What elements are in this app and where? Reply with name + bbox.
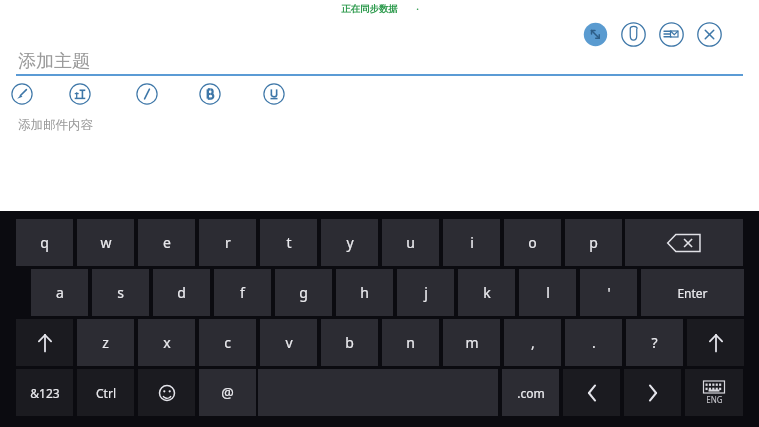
button[interactable]: Font size: [69, 83, 91, 105]
button[interactable]: u: [382, 219, 439, 266]
staticText: k: [483, 283, 491, 302]
button[interactable]: Italic: [136, 83, 158, 105]
staticText: 正在同步数据: [341, 3, 398, 15]
button[interactable]: e: [138, 219, 195, 266]
button[interactable]: r: [199, 219, 256, 266]
button[interactable]: s: [92, 269, 149, 316]
button[interactable]: @: [199, 369, 256, 416]
staticText: j: [424, 283, 428, 302]
button[interactable]: .com: [502, 369, 559, 416]
button[interactable]: z: [77, 319, 134, 366]
staticText: f: [240, 283, 245, 302]
button[interactable]: Backspace: [625, 219, 743, 266]
staticText: r: [225, 233, 231, 252]
button[interactable]: v: [260, 319, 317, 366]
button[interactable]: Shift: [16, 319, 73, 366]
button[interactable]: y: [321, 219, 378, 266]
staticText: z: [102, 333, 109, 352]
staticText: l: [546, 283, 550, 302]
staticText: @: [221, 383, 234, 402]
button[interactable]: h: [336, 269, 393, 316]
staticText: ENG: [706, 394, 723, 405]
button[interactable]: c: [199, 319, 256, 366]
button[interactable]: d: [153, 269, 210, 316]
staticText: ,: [531, 333, 535, 352]
staticText: e: [163, 233, 171, 252]
staticText: o: [528, 233, 537, 252]
button[interactable]: Attach file: [621, 22, 646, 47]
button[interactable]: b: [321, 319, 378, 366]
button[interactable]: f: [214, 269, 271, 316]
button[interactable]: ,: [504, 319, 561, 366]
button[interactable]: w: [77, 219, 134, 266]
staticText: m: [465, 333, 479, 352]
staticText: b: [345, 333, 354, 352]
button[interactable]: Shift: [687, 319, 744, 366]
button[interactable]: q: [16, 219, 73, 266]
button[interactable]: j: [397, 269, 454, 316]
button[interactable]: Right: [624, 369, 681, 416]
button[interactable]: Underline: [263, 83, 285, 105]
staticText: &123: [30, 385, 60, 401]
staticText: ?: [651, 333, 658, 352]
staticText: h: [360, 283, 369, 302]
button[interactable]: Ctrl: [77, 369, 134, 416]
button[interactable]: o: [504, 219, 561, 266]
staticText: .: [592, 333, 596, 352]
button[interactable]: Enter: [641, 269, 744, 316]
button[interactable]: g: [275, 269, 332, 316]
button[interactable]: x: [138, 319, 195, 366]
button[interactable]: 添加邮件内容: [18, 114, 518, 136]
button[interactable]: Format brush: [11, 83, 33, 105]
staticText: Ctrl: [96, 385, 116, 401]
staticText: a: [56, 283, 64, 302]
button[interactable]: .: [565, 319, 622, 366]
button[interactable]: Emoji: [138, 369, 195, 416]
staticText: ·: [416, 2, 419, 15]
staticText: ': [607, 283, 611, 302]
button[interactable]: Close: [697, 22, 722, 47]
button[interactable]: Send: [659, 22, 684, 47]
button[interactable]: ?: [626, 319, 683, 366]
button[interactable]: Collapse: [583, 22, 608, 47]
button[interactable]: k: [458, 269, 515, 316]
button[interactable]: 添加主题: [18, 48, 743, 74]
staticText: c: [224, 333, 231, 352]
staticText: t: [286, 233, 292, 252]
button[interactable]: m: [443, 319, 500, 366]
staticText: Enter: [677, 285, 708, 301]
staticText: s: [117, 283, 124, 302]
button[interactable]: &123: [16, 369, 73, 416]
button[interactable]: t: [260, 219, 317, 266]
staticText: w: [100, 233, 112, 252]
button[interactable]: a: [31, 269, 88, 316]
button[interactable]: p: [565, 219, 622, 266]
staticText: x: [163, 333, 171, 352]
button[interactable]: i: [443, 219, 500, 266]
button[interactable]: ': [580, 269, 637, 316]
staticText: q: [40, 233, 49, 252]
staticText: p: [589, 233, 598, 252]
button[interactable]: Left: [563, 369, 620, 416]
staticText: d: [177, 283, 186, 302]
button[interactable]: n: [382, 319, 439, 366]
staticText: .com: [517, 385, 545, 401]
button[interactable]: Keyboard ENG: [685, 369, 743, 416]
staticText: g: [299, 283, 308, 302]
button[interactable]: l: [519, 269, 576, 316]
staticText: 添加主题: [18, 50, 90, 73]
staticText: i: [470, 233, 474, 252]
staticText: y: [346, 233, 354, 252]
staticText: v: [285, 333, 293, 352]
button[interactable]: Bold: [199, 83, 221, 105]
staticText: u: [406, 233, 415, 252]
staticText: 添加邮件内容: [18, 117, 93, 133]
staticText: n: [406, 333, 415, 352]
